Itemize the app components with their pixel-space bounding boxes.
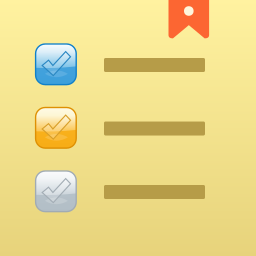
button[interactable]: Toggle task bbox=[36, 107, 76, 148]
button[interactable]: Toggle task bbox=[36, 171, 76, 212]
button[interactable]: Bookmark bbox=[168, 0, 209, 38]
button[interactable]: Toggle task bbox=[36, 44, 76, 85]
